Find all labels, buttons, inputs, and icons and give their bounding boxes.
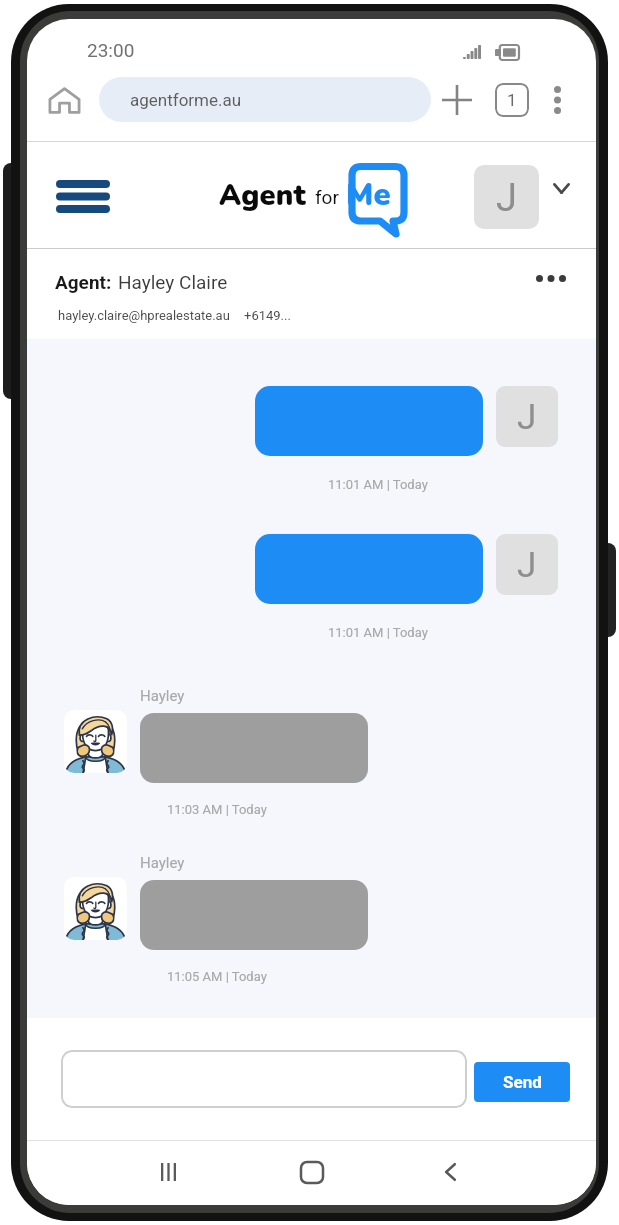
- button[interactable]: J: [474, 165, 539, 229]
- button[interactable]: Account menu: [541, 168, 581, 208]
- staticText: 11:01 AM | Today: [328, 477, 428, 492]
- button[interactable]: Message from Hayley: [140, 880, 368, 950]
- button[interactable]: More: [527, 254, 575, 302]
- button[interactable]: Home: [42, 78, 86, 122]
- button[interactable]: New tab: [435, 78, 479, 122]
- staticText: 1: [507, 90, 517, 110]
- staticText: hayley.claire@hprealestate.au: [58, 308, 230, 323]
- staticText: 11:05 AM | Today: [167, 969, 267, 984]
- staticText: Agent:: [55, 271, 112, 293]
- staticText: 23:00: [87, 39, 135, 61]
- staticText: Hayley: [140, 687, 185, 705]
- button[interactable]: Menu: [51, 167, 115, 225]
- button[interactable]: Message: [255, 534, 483, 604]
- staticText: Send: [503, 1072, 542, 1092]
- button[interactable]: Tabs: [483, 71, 541, 129]
- staticText: 11:03 AM | Today: [167, 802, 267, 817]
- staticText: J: [517, 545, 537, 586]
- button[interactable]: agentforme.au: [99, 77, 431, 122]
- button[interactable]: Home: [283, 1143, 341, 1201]
- staticText: J: [496, 176, 517, 221]
- staticText: J: [517, 397, 537, 438]
- staticText: Hayley: [140, 854, 185, 872]
- staticText: agentforme.au: [130, 90, 242, 110]
- button[interactable]: Send: [474, 1062, 570, 1102]
- staticText: Me: [346, 174, 391, 216]
- button[interactable]: Message: [255, 386, 483, 456]
- staticText: 11:01 AM | Today: [328, 625, 428, 640]
- staticText: Agent: [219, 176, 307, 216]
- button[interactable]: Message from Hayley: [140, 713, 368, 783]
- staticText: +6149...: [244, 308, 291, 323]
- button[interactable]: More options: [535, 78, 579, 122]
- button[interactable]: Message input: [61, 1050, 467, 1108]
- button[interactable]: Back: [421, 1143, 479, 1201]
- staticText: for: [315, 186, 339, 208]
- staticText: Hayley Claire: [118, 271, 228, 293]
- button[interactable]: Recent apps: [139, 1143, 197, 1201]
